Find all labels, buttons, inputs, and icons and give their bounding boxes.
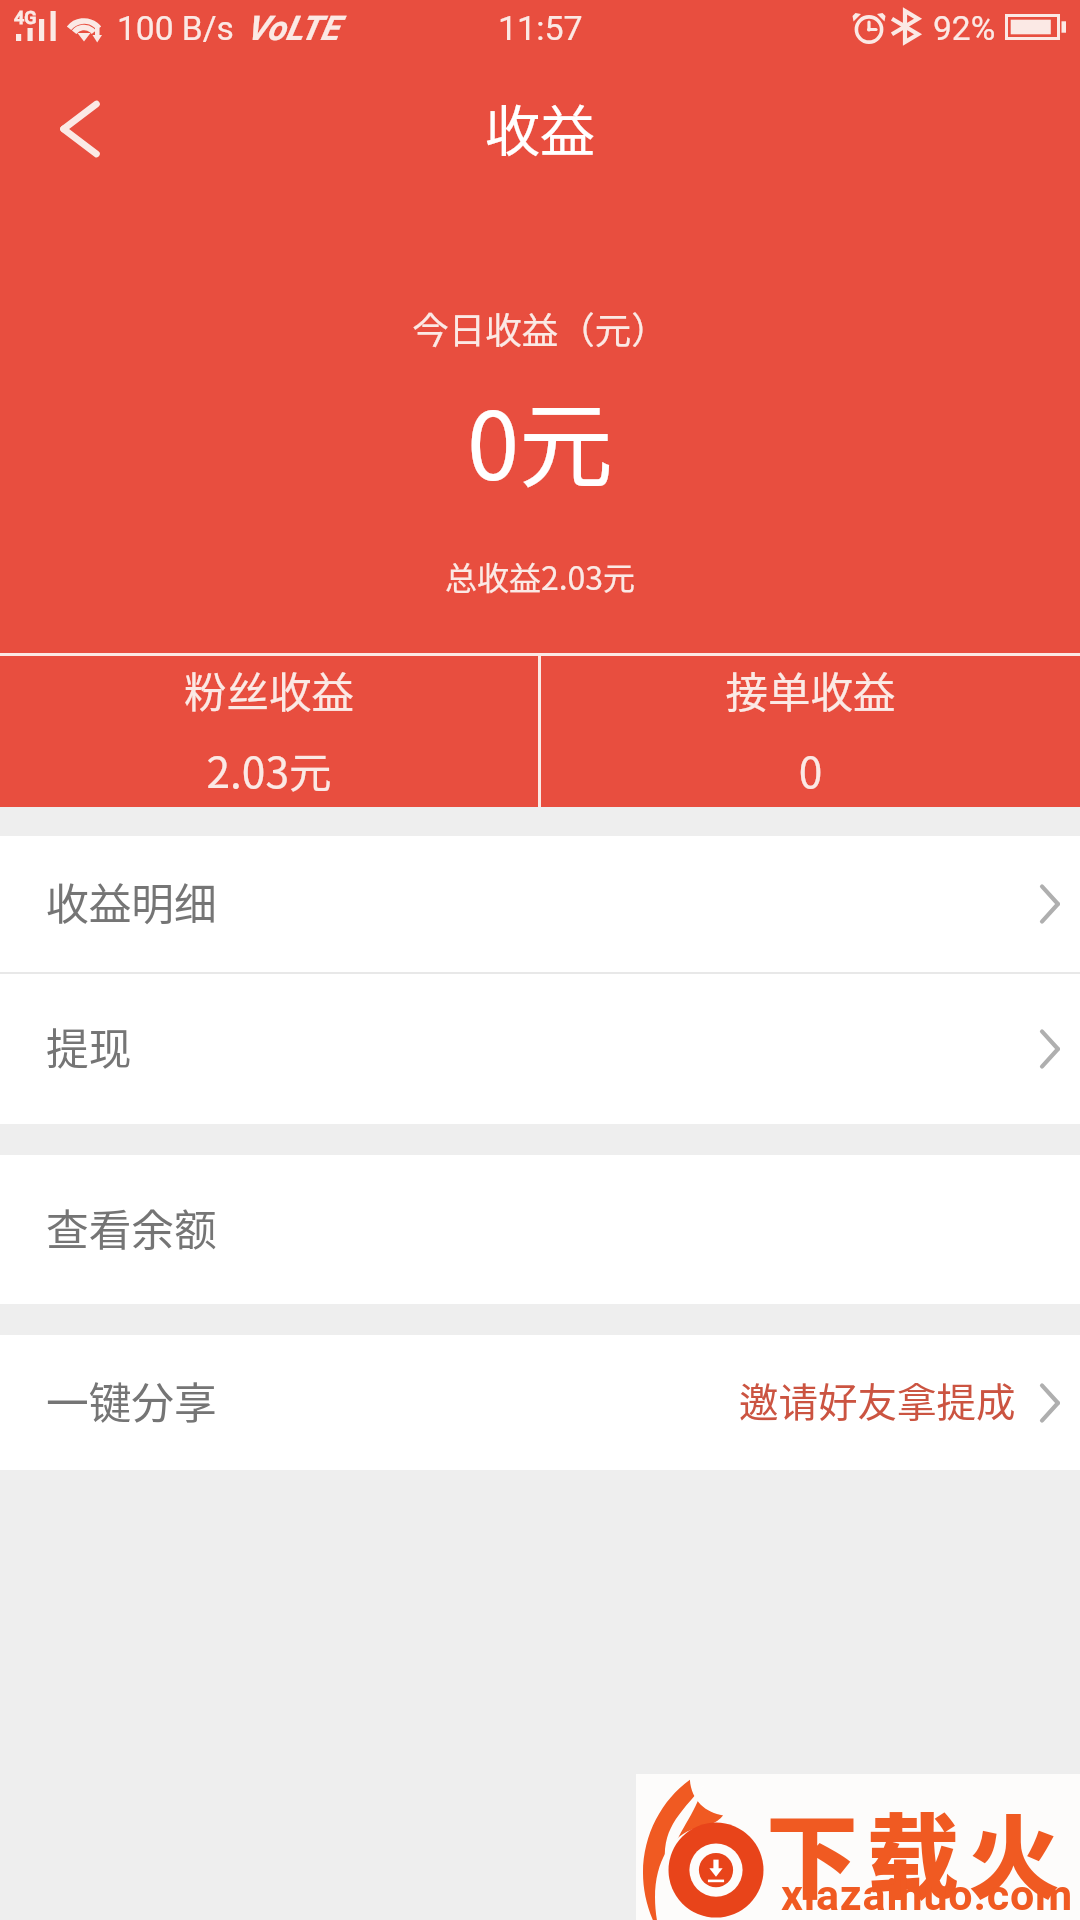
staticText: 92% [933,9,996,48]
staticText: xiazaihuo.com [781,1870,1074,1920]
button[interactable]: 收益明细 [0,836,1080,972]
button[interactable]: 查看余额 [0,1155,1080,1304]
staticText: 11:57 [498,8,583,48]
staticText: 收益 [485,87,596,167]
staticText: 下载火 [766,1784,1070,1917]
button[interactable]: 一键分享 [0,1335,1080,1470]
staticText: 总收益2.03元 [0,553,1080,599]
staticText: 一键分享 [46,1369,217,1431]
staticText: 提现 [46,1015,132,1077]
button[interactable]: 提现 [0,974,1080,1124]
staticText: 查看余额 [46,1196,217,1258]
staticText: 邀请好友拿提成 [739,1371,1016,1428]
staticText: 2.03元 [0,739,538,801]
staticText: VoLTE [246,8,339,48]
staticText: 0 [541,739,1080,801]
staticText: 今日收益（元） [0,302,1080,355]
button[interactable]: Back [0,58,150,200]
staticText: 接单收益 [541,659,1080,721]
staticText: 100 B/s [117,9,234,48]
staticText: 0元 [0,371,1080,507]
staticText: 4G [14,7,37,28]
staticText: 粉丝收益 [0,659,538,721]
button[interactable]: 接单收益 [541,656,1080,807]
staticText: 收益明细 [46,870,217,932]
button[interactable]: 粉丝收益 [0,656,538,807]
